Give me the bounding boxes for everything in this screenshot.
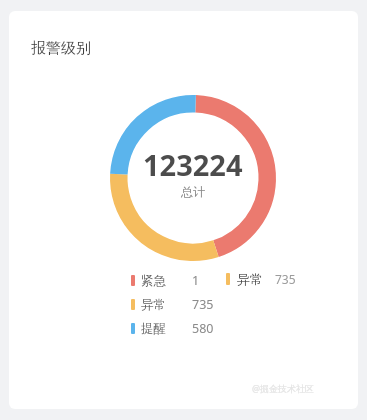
- staticText: 提醒: [141, 321, 166, 337]
- staticText: 紧急: [141, 273, 166, 289]
- staticText: 报警级别: [31, 39, 91, 58]
- other: Watermark: [252, 382, 315, 394]
- button[interactable]: 紧急: [131, 272, 246, 289]
- button[interactable]: 异常: [216, 265, 310, 293]
- button[interactable]: 123224: [110, 95, 276, 261]
- staticText: 1: [192, 272, 200, 289]
- staticText: 异常: [237, 271, 263, 287]
- button[interactable]: 提醒: [131, 320, 246, 337]
- staticText: 735: [192, 296, 214, 313]
- staticText: @掘金技术社区: [252, 382, 315, 394]
- staticText: 735: [275, 271, 296, 287]
- staticText: 异常: [141, 297, 166, 313]
- staticText: 总计: [181, 184, 205, 199]
- staticText: 580: [192, 320, 214, 337]
- staticText: 123224: [143, 145, 243, 184]
- button[interactable]: 异常: [131, 296, 246, 313]
